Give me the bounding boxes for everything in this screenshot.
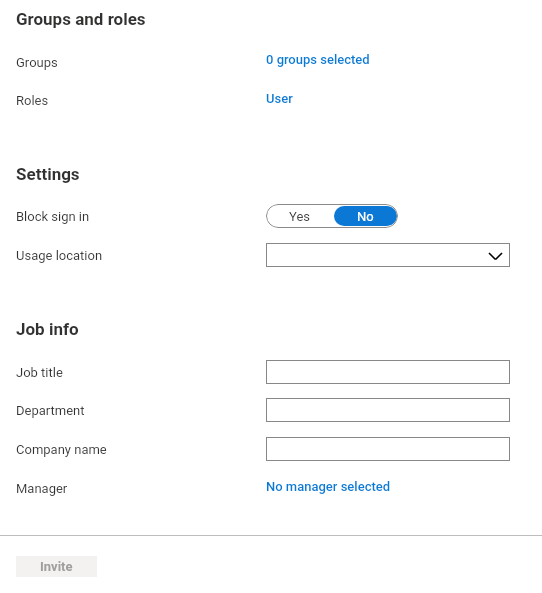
button[interactable]: User bbox=[266, 91, 293, 106]
button[interactable]: Department bbox=[266, 398, 510, 422]
staticText: Groups and roles bbox=[16, 9, 146, 29]
staticText: Yes bbox=[289, 209, 310, 224]
button[interactable]: Invite bbox=[16, 556, 97, 577]
button[interactable]: No bbox=[334, 206, 397, 226]
staticText: No manager selected bbox=[266, 479, 391, 494]
staticText: Department bbox=[16, 403, 85, 418]
staticText: Company name bbox=[16, 442, 107, 457]
staticText: Block sign in bbox=[16, 209, 90, 224]
staticText: Manager bbox=[16, 481, 68, 496]
staticText: Job title bbox=[16, 365, 63, 380]
staticText: Invite bbox=[40, 559, 73, 574]
staticText: Settings bbox=[16, 164, 80, 184]
button[interactable]: No manager selected bbox=[266, 479, 391, 494]
button[interactable]: Company name bbox=[266, 437, 510, 461]
button[interactable]: Usage location bbox=[266, 243, 510, 267]
staticText: User bbox=[266, 91, 293, 106]
staticText: Groups bbox=[16, 55, 58, 70]
staticText: Roles bbox=[16, 93, 49, 108]
staticText: 0 groups selected bbox=[266, 52, 370, 67]
staticText: No bbox=[357, 209, 374, 224]
button[interactable]: Job title bbox=[266, 360, 510, 384]
button[interactable]: Yes bbox=[266, 204, 333, 228]
staticText: Usage location bbox=[16, 248, 103, 263]
button[interactable]: 0 groups selected bbox=[266, 52, 370, 67]
staticText: Job info bbox=[16, 319, 79, 339]
